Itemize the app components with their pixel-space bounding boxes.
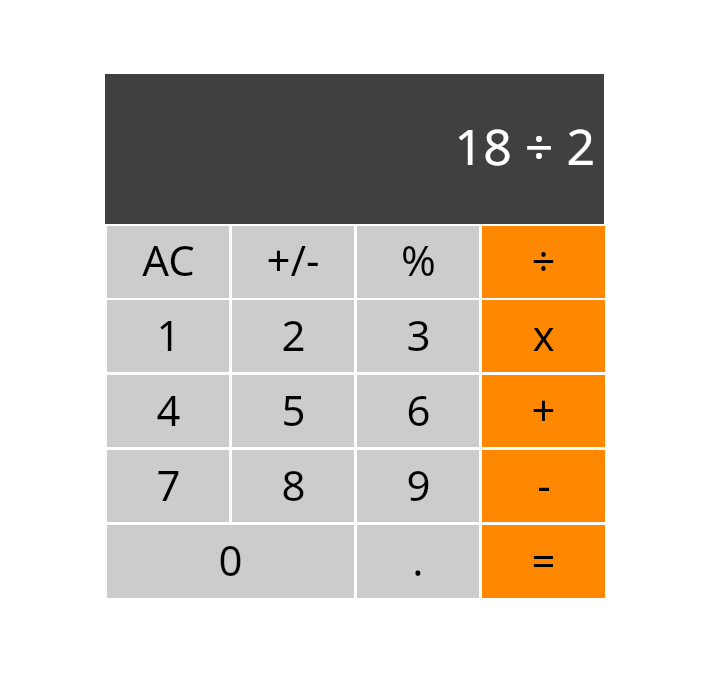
button[interactable]: All clear: [107, 226, 229, 298]
staticText: +: [531, 381, 556, 438]
button[interactable]: Five: [232, 375, 354, 447]
button[interactable]: One: [107, 300, 229, 372]
button[interactable]: Toggle sign: [232, 226, 354, 298]
button[interactable]: Divide: [482, 226, 605, 298]
staticText: 18 ÷ 2: [454, 112, 595, 180]
staticText: ÷: [531, 231, 556, 288]
button[interactable]: Multiply: [482, 300, 605, 372]
staticText: x: [532, 306, 555, 363]
staticText: 8: [281, 456, 306, 513]
button[interactable]: Six: [357, 375, 479, 447]
button[interactable]: Seven: [107, 450, 229, 522]
staticText: 2: [281, 306, 306, 363]
staticText: %: [401, 231, 436, 288]
staticText: 0: [218, 531, 243, 588]
button[interactable]: Four: [107, 375, 229, 447]
staticText: 3: [406, 306, 431, 363]
staticText: 9: [406, 456, 431, 513]
staticText: =: [531, 531, 556, 588]
button[interactable]: Three: [357, 300, 479, 372]
staticText: +/-: [266, 231, 320, 288]
button[interactable]: Zero: [107, 525, 354, 598]
staticText: 7: [156, 456, 181, 513]
button[interactable]: Plus: [482, 375, 605, 447]
staticText: AC: [142, 231, 195, 288]
staticText: 5: [281, 381, 306, 438]
staticText: 1: [156, 306, 181, 363]
staticText: -: [537, 456, 551, 513]
button[interactable]: Equals: [482, 525, 605, 598]
button[interactable]: Decimal point: [357, 525, 479, 598]
button[interactable]: Eight: [232, 450, 354, 522]
button[interactable]: Two: [232, 300, 354, 372]
button[interactable]: Nine: [357, 450, 479, 522]
button[interactable]: Minus: [482, 450, 605, 522]
staticText: .: [412, 531, 424, 588]
staticText: 4: [156, 381, 181, 438]
button[interactable]: Percent: [357, 226, 479, 298]
button[interactable]: 18 ÷ 2: [105, 74, 604, 224]
staticText: 6: [406, 381, 431, 438]
